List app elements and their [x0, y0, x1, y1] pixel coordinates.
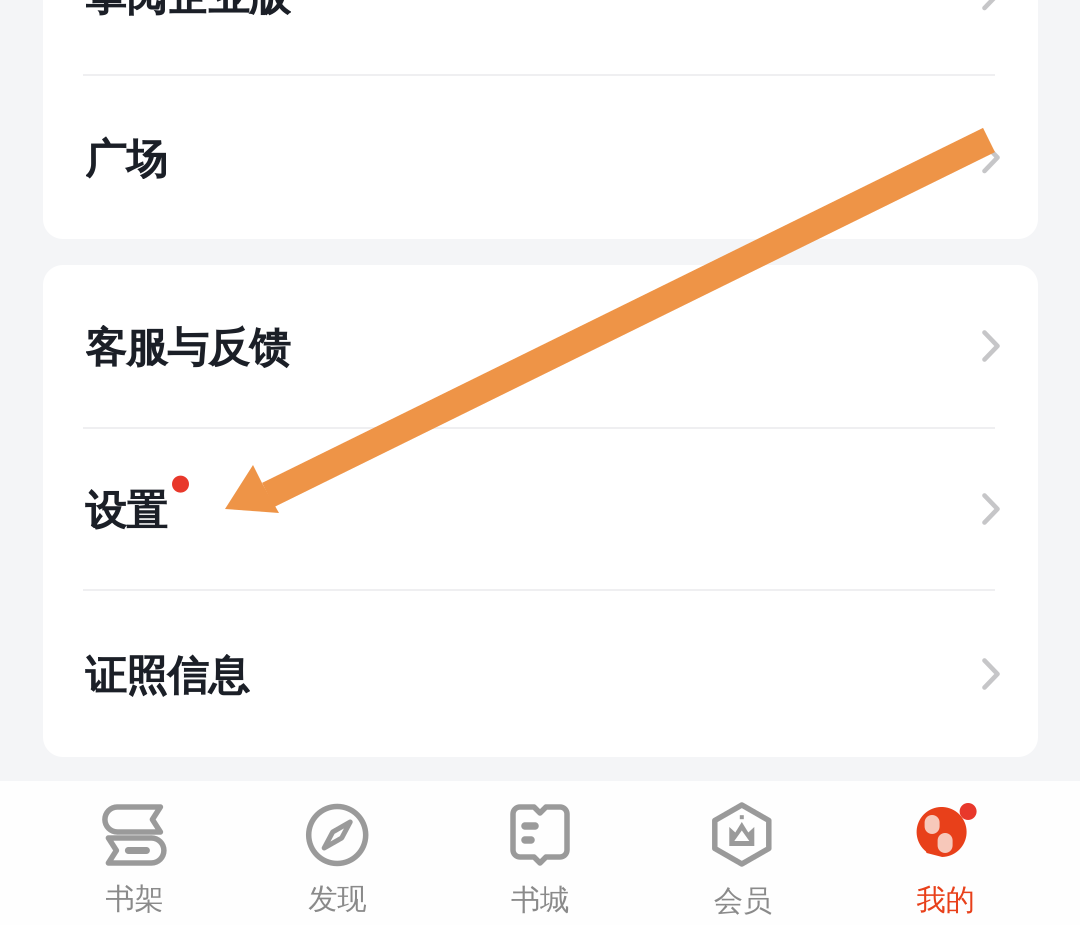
button[interactable]: 书架 [33, 783, 236, 923]
button[interactable]: 客服与反馈 [43, 265, 1038, 427]
button[interactable]: 广场 [43, 76, 1038, 239]
staticText: 发现 [308, 881, 366, 917]
button[interactable]: 我的 [844, 782, 1047, 924]
staticText: 会员 [714, 883, 772, 919]
button[interactable]: 书城 [439, 782, 641, 924]
staticText: 证照信息 [85, 651, 249, 701]
staticText: 书架 [105, 881, 163, 917]
staticText: 广场 [85, 134, 167, 185]
staticText: 书城 [511, 882, 569, 918]
button[interactable]: 掌阅企业版 [43, 0, 1038, 74]
button[interactable]: 设置 [43, 429, 1038, 589]
staticText: 我的 [917, 882, 975, 918]
staticText: 设置 [85, 486, 167, 536]
staticText: 客服与反馈 [85, 323, 290, 373]
button[interactable]: 会员 [641, 781, 844, 925]
button[interactable]: 证照信息 [43, 591, 1038, 757]
staticText: 掌阅企业版 [85, 0, 290, 22]
button[interactable]: 发现 [236, 783, 439, 923]
